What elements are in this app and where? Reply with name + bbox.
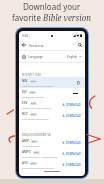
button[interactable]: DOWNLOAD	[61, 150, 82, 157]
staticText: Bible	[31, 80, 36, 83]
staticText: AMP	[22, 139, 29, 143]
button[interactable]: NLT	[19, 110, 85, 121]
button[interactable]: Search	[77, 42, 83, 48]
staticText: DOWNLOAD	[66, 141, 81, 144]
staticText: Download your	[23, 1, 81, 12]
button[interactable]: DOWNLOAD	[61, 139, 82, 146]
staticText: Bible	[31, 102, 36, 105]
staticText: DOWNLOAD	[66, 152, 81, 155]
staticText: ASV	[22, 161, 28, 165]
staticText: DOWNLOAD	[66, 114, 81, 117]
staticText: favorite Bible version	[12, 12, 92, 23]
staticText: English Standard Version	[22, 106, 52, 109]
button[interactable]: AMPC	[19, 148, 85, 159]
staticText: Amplified Bible	[22, 144, 40, 147]
staticText: NLT	[22, 112, 28, 116]
button[interactable]: NIV	[19, 77, 85, 88]
staticText: Bible	[31, 162, 36, 165]
staticText: NIV	[22, 79, 28, 83]
staticText: Bible	[34, 151, 39, 154]
staticText: RECENTLY USED	[22, 73, 42, 76]
staticText: DOWNLOAD	[66, 163, 81, 166]
staticText: ENGLISH (VERSIONS: 54)	[22, 133, 52, 136]
staticText: 9:30	[22, 34, 28, 38]
button[interactable]: DOWNLOAD	[61, 101, 82, 108]
staticText: Language	[28, 55, 43, 59]
button[interactable]: AMP	[19, 137, 85, 148]
staticText: English	[67, 55, 78, 59]
staticText: KJV	[22, 90, 27, 94]
staticText: Bible	[32, 140, 37, 143]
staticText: AMPC	[22, 150, 31, 154]
button[interactable]: KJV	[19, 88, 85, 99]
staticText: Bible	[30, 91, 35, 94]
staticText: Amplified Bible, Classic Edition	[22, 155, 58, 158]
staticText: Bible	[31, 113, 36, 116]
button[interactable]: ASV	[19, 159, 85, 170]
button[interactable]: Back	[21, 42, 27, 48]
staticText: ESV	[22, 101, 28, 105]
staticText: New Living Translation	[22, 117, 49, 120]
button[interactable]: DOWNLOAD	[61, 112, 82, 119]
staticText: Versions	[29, 43, 44, 48]
button[interactable]: ESV	[19, 99, 85, 110]
staticText: American Standard Version	[22, 166, 54, 169]
staticText: New International Version	[22, 84, 53, 87]
button[interactable]: Delete	[75, 79, 82, 86]
button[interactable]: Language	[19, 51, 85, 62]
staticText: DOWNLOAD	[66, 103, 81, 106]
button[interactable]: DOWNLOAD	[61, 161, 82, 168]
staticText: King James Version	[22, 95, 45, 98]
